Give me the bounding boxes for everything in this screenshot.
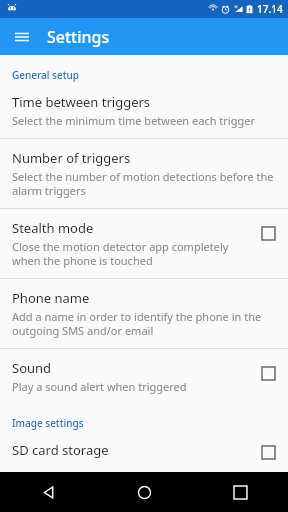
staticText: Stealth mode [12, 219, 94, 237]
staticText: Image settings [12, 416, 84, 430]
staticText: Play a sound alert when triggered [12, 379, 187, 394]
button[interactable]: Recent apps [192, 472, 288, 512]
button[interactable]: Back [0, 472, 96, 512]
staticText: Number of triggers [12, 149, 131, 167]
button[interactable]: Open navigation menu [8, 23, 36, 51]
button[interactable]: Phone name [0, 279, 288, 348]
button[interactable]: Stealth mode [0, 209, 288, 278]
button[interactable]: Sound [0, 349, 288, 404]
staticText: Phone name [12, 289, 90, 307]
button[interactable]: SD card storage [0, 436, 288, 472]
staticText: Time between triggers [12, 93, 151, 111]
staticText: Sound [12, 359, 52, 377]
staticText: Close the motion detector app completely… [12, 239, 250, 268]
staticText: SD card storage [12, 441, 109, 459]
staticText: Select the minimum time between each tri… [12, 113, 255, 128]
button[interactable]: Time between triggers [0, 88, 288, 138]
staticText: Add a name in order to identify the phon… [12, 309, 280, 338]
button[interactable]: Home [96, 472, 192, 512]
staticText: General setup [12, 68, 79, 82]
staticText: Settings [47, 26, 110, 48]
staticText: 17.14 [257, 2, 283, 16]
button[interactable]: Number of triggers [0, 139, 288, 208]
staticText: Select the number of motion detections b… [12, 169, 280, 198]
